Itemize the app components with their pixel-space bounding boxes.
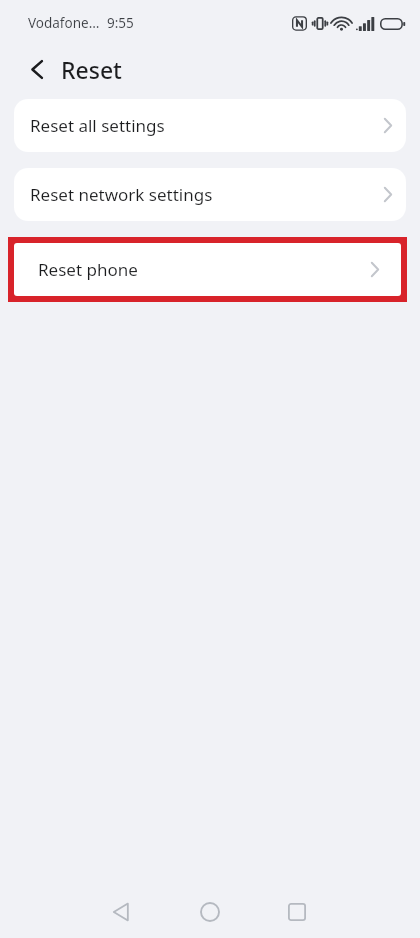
staticText: Reset phone	[38, 258, 138, 281]
staticText: 9:55	[107, 14, 134, 32]
button[interactable]: Back	[20, 52, 54, 86]
staticText: Reset	[61, 54, 122, 85]
button[interactable]: Home	[188, 890, 232, 934]
button[interactable]: Reset all settings	[14, 99, 406, 152]
button[interactable]: Reset network settings	[14, 168, 406, 221]
button[interactable]: Recent apps	[275, 890, 319, 934]
staticText: Reset all settings	[30, 114, 165, 137]
button[interactable]: Reset phone	[14, 243, 401, 296]
staticText: Reset network settings	[30, 183, 213, 206]
staticText: Vodafone…	[28, 14, 100, 32]
button[interactable]: Back	[99, 890, 143, 934]
